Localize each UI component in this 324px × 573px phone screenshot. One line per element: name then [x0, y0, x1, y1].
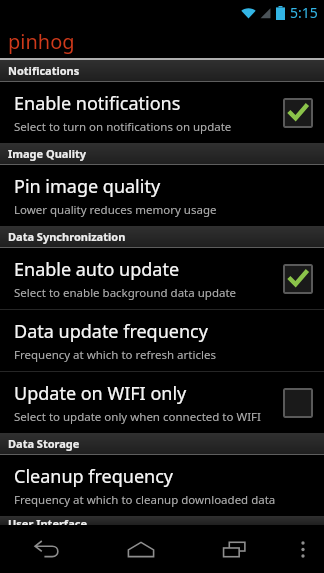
staticText: Enable auto update — [14, 257, 180, 282]
button[interactable]: Pin image quality — [0, 165, 324, 226]
button[interactable]: Unchecked — [283, 388, 313, 418]
button[interactable]: Home — [94, 525, 188, 573]
staticText: Pin image quality — [14, 174, 161, 199]
button[interactable]: Checked — [283, 264, 313, 294]
staticText: Frequency at which to cleanup downloaded… — [14, 492, 276, 508]
staticText: Update on WIFI only — [14, 381, 187, 406]
staticText: Data Storage — [8, 436, 80, 451]
staticText: Notifications — [8, 63, 80, 78]
staticText: Cleanup frequency — [14, 464, 173, 489]
button[interactable]: Update on WIFI only — [0, 372, 324, 433]
staticText: Data Synchronization — [8, 229, 126, 244]
staticText: Data update frequency — [14, 319, 208, 344]
button[interactable]: Back — [0, 525, 94, 573]
staticText: Select to turn on notifications on updat… — [14, 119, 232, 135]
staticText: Select to enable background data update — [14, 285, 237, 301]
button[interactable]: Checked — [283, 98, 313, 128]
staticText: Lower quality reduces memory usage — [14, 202, 217, 218]
button[interactable]: Enable auto update — [0, 248, 324, 309]
staticText: User Interface — [8, 516, 87, 525]
button[interactable]: Cleanup frequency — [0, 455, 324, 516]
staticText: Enable notifications — [14, 91, 181, 116]
staticText: Frequency at which to refresh articles — [14, 347, 216, 363]
staticText: Image Quality — [8, 146, 87, 161]
button[interactable]: Enable notifications — [0, 82, 324, 143]
button[interactable]: Recent apps — [188, 525, 282, 573]
button[interactable]: More options — [282, 525, 324, 573]
staticText: 5:15 — [290, 3, 318, 22]
button[interactable]: pinhog — [0, 24, 324, 58]
staticText: Select to update only when connected to … — [14, 409, 261, 425]
button[interactable]: Data update frequency — [0, 310, 324, 371]
staticText: pinhog — [8, 28, 75, 55]
